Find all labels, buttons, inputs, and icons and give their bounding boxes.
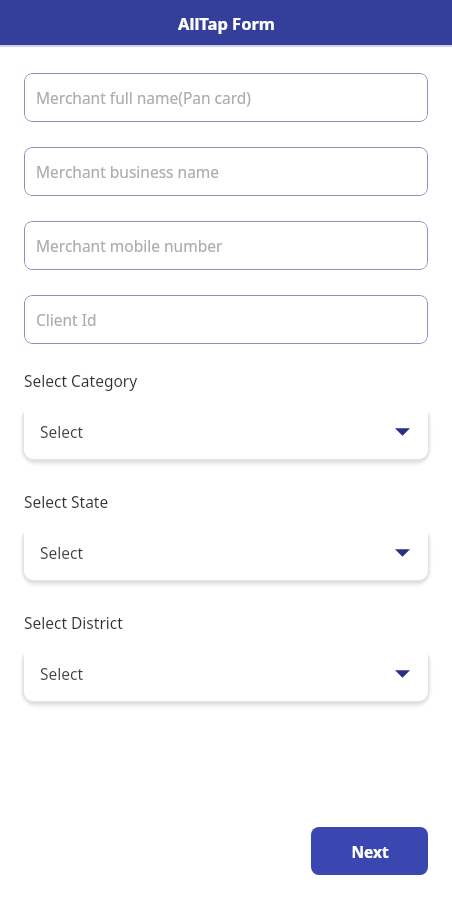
button[interactable]: Select bbox=[24, 646, 428, 701]
button[interactable]: Select bbox=[24, 525, 428, 580]
staticText: Select bbox=[40, 663, 395, 684]
staticText: Merchant business name bbox=[36, 161, 220, 182]
staticText: Select Category bbox=[24, 370, 138, 391]
staticText: Select bbox=[40, 542, 395, 563]
staticText: Client Id bbox=[36, 309, 97, 330]
button[interactable]: Select bbox=[24, 404, 428, 459]
staticText: Select State bbox=[24, 491, 109, 512]
staticText: AllTap Form bbox=[178, 12, 275, 34]
staticText: Merchant full name(Pan card) bbox=[36, 87, 252, 108]
staticText: Select bbox=[40, 421, 395, 442]
staticText: Select District bbox=[24, 612, 123, 633]
other: Open dropdown bbox=[395, 548, 410, 558]
button[interactable]: Merchant full name(Pan card) bbox=[24, 73, 428, 122]
staticText: Merchant mobile number bbox=[36, 235, 223, 256]
other: Open dropdown bbox=[395, 669, 410, 679]
button[interactable]: Merchant business name bbox=[24, 147, 428, 196]
button[interactable]: Merchant mobile number bbox=[24, 221, 428, 270]
button[interactable]: Client Id bbox=[24, 295, 428, 344]
staticText: Next bbox=[351, 841, 389, 862]
other: Open dropdown bbox=[395, 427, 410, 437]
button[interactable]: Next bbox=[311, 827, 428, 875]
